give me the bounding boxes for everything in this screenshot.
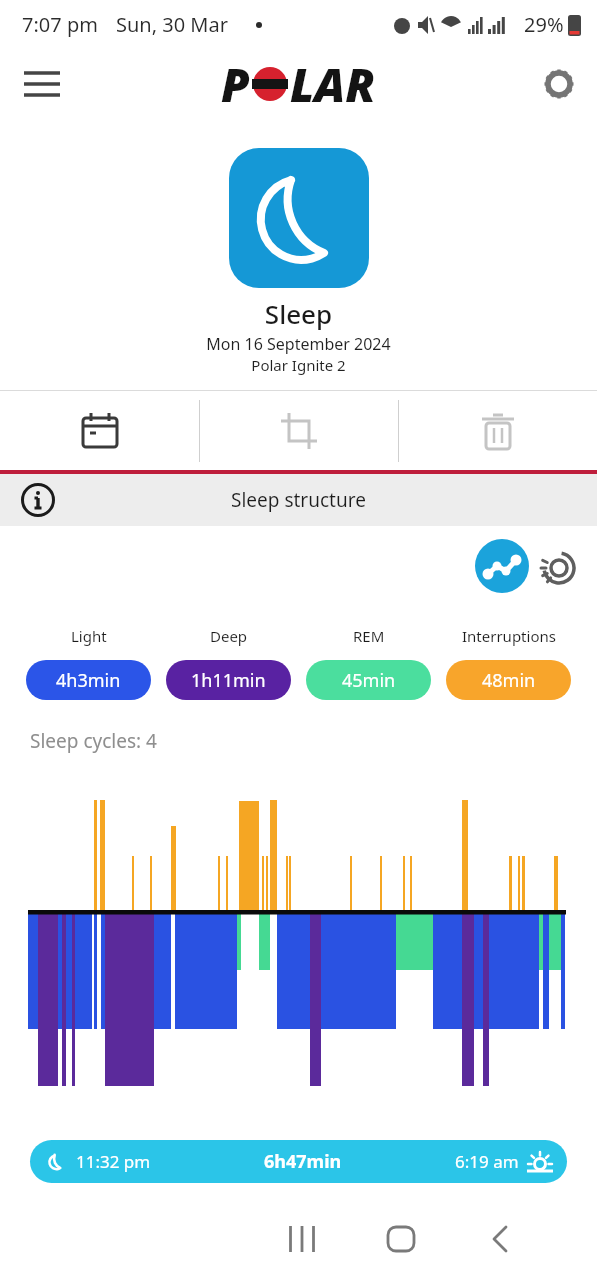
button[interactable] bbox=[535, 60, 583, 108]
staticText: Sun, 30 Mar bbox=[116, 11, 228, 38]
staticText: 29% bbox=[524, 11, 564, 38]
staticText: Interruptions bbox=[462, 626, 556, 646]
staticText: Sleep cycles: 4 bbox=[30, 728, 157, 754]
staticText: Deep bbox=[210, 626, 248, 646]
staticText: 6:19 am bbox=[455, 1150, 519, 1173]
staticText: 45min bbox=[342, 668, 396, 693]
button[interactable] bbox=[475, 539, 529, 593]
staticText: 6h47min bbox=[264, 1149, 342, 1174]
button[interactable] bbox=[0, 391, 199, 470]
button[interactable] bbox=[539, 543, 585, 589]
button[interactable] bbox=[229, 148, 369, 288]
staticText: REM bbox=[353, 626, 385, 646]
button[interactable] bbox=[20, 482, 56, 518]
staticText: LAR bbox=[290, 53, 376, 115]
staticText: Mon 16 September 2024 bbox=[0, 333, 597, 355]
staticText: 1h11min bbox=[191, 668, 266, 693]
button[interactable] bbox=[18, 60, 66, 108]
staticText: P bbox=[221, 53, 250, 115]
button[interactable] bbox=[200, 391, 398, 470]
button[interactable]: 11:32 pm bbox=[30, 1140, 567, 1183]
button[interactable]: 4h3min bbox=[26, 660, 151, 700]
staticText: 11:32 pm bbox=[76, 1150, 151, 1173]
staticText: Light bbox=[71, 626, 107, 646]
button[interactable]: 1h11min bbox=[166, 660, 291, 700]
button[interactable] bbox=[274, 1211, 330, 1267]
staticText: Sleep bbox=[0, 296, 597, 331]
button[interactable] bbox=[474, 1211, 530, 1267]
staticText: Polar Ignite 2 bbox=[0, 355, 597, 375]
staticText: 48min bbox=[482, 668, 536, 693]
button[interactable] bbox=[373, 1211, 429, 1267]
staticText: Sleep structure bbox=[231, 487, 366, 513]
button[interactable]: 45min bbox=[306, 660, 431, 700]
button[interactable]: 48min bbox=[446, 660, 571, 700]
staticText: 4h3min bbox=[56, 668, 121, 693]
button[interactable] bbox=[399, 391, 597, 470]
staticText: 7:07 pm bbox=[22, 11, 98, 38]
